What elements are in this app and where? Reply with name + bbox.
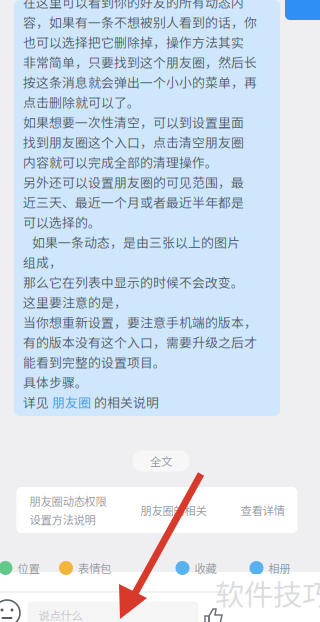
staticText: 具体步骤。: [23, 373, 88, 391]
staticText: 详见: [23, 393, 52, 411]
staticText: 能看到完整的设置项目。: [23, 353, 166, 371]
staticText: 朋友圈动态权限: [29, 493, 106, 509]
staticText: 如果一条动态，是由三张以上的图片: [23, 233, 240, 251]
button[interactable]: Emoji keyboard: [0, 598, 22, 622]
button[interactable]: 全文: [132, 450, 189, 471]
staticText: 说点什么: [38, 607, 82, 622]
staticText: 的相关说明: [91, 393, 159, 411]
staticText: 这里要注意的是，: [23, 293, 127, 311]
button[interactable]: Like: [204, 607, 226, 622]
staticText: 内容就可以完成全部的清理操作。: [23, 153, 218, 171]
staticText: 如果想要一次性清空，可以到设置里面: [23, 113, 244, 131]
staticText: 朋友圈的相关: [140, 502, 206, 518]
staticText: 非常简单，只要找到这个朋友圈，然后长: [23, 53, 257, 71]
button[interactable]: 相册: [243, 554, 296, 582]
staticText: 组成，: [23, 253, 62, 271]
staticText: 位置: [17, 560, 39, 576]
staticText: 容，如果有一条不想被别人看到的话，你: [23, 13, 257, 31]
staticText: 朋友圈: [52, 393, 91, 411]
button[interactable]: 在这里可以看到你的好友的所有动态内: [14, 0, 280, 416]
button[interactable]: 朋友圈动态权限: [16, 487, 297, 533]
staticText: 点击删除就可以了。: [23, 93, 140, 111]
staticText: 那么它在列表中显示的时候不会改变。: [23, 273, 244, 291]
staticText: 设置方法说明: [29, 511, 95, 527]
staticText: 全文: [150, 453, 172, 469]
staticText: 有的版本没有这个入口，需要升级之后才: [23, 333, 257, 351]
staticText: 找到朋友圈这个入口，点击清空朋友圈: [23, 133, 244, 151]
staticText: 另外还可以设置朋友圈的可见范围，最: [23, 173, 244, 191]
staticText: 当你想重新设置，要注意手机端的版本，: [23, 313, 257, 331]
staticText: 查看详情: [240, 502, 284, 518]
staticText: 可以选择的。: [23, 213, 101, 231]
staticText: 近三天、最近一个月或者最近半年都是: [23, 193, 244, 211]
staticText: 表情包: [78, 560, 111, 576]
staticText: 也可以选择把它删除掉，操作方法其实: [23, 33, 244, 51]
staticText: 按这条消息就会弹出一个小小的菜单，再: [23, 73, 257, 91]
staticText: 在这里可以看到你的好友的所有动态内: [23, 0, 244, 11]
staticText: 收藏: [194, 560, 216, 576]
button[interactable]: 位置: [0, 554, 45, 582]
staticText: 相册: [268, 560, 290, 576]
button[interactable]: 收藏: [169, 554, 222, 582]
button[interactable]: 表情包: [53, 554, 117, 582]
staticText: 软件技巧: [215, 572, 320, 614]
button[interactable]: 说点什么: [27, 601, 198, 622]
